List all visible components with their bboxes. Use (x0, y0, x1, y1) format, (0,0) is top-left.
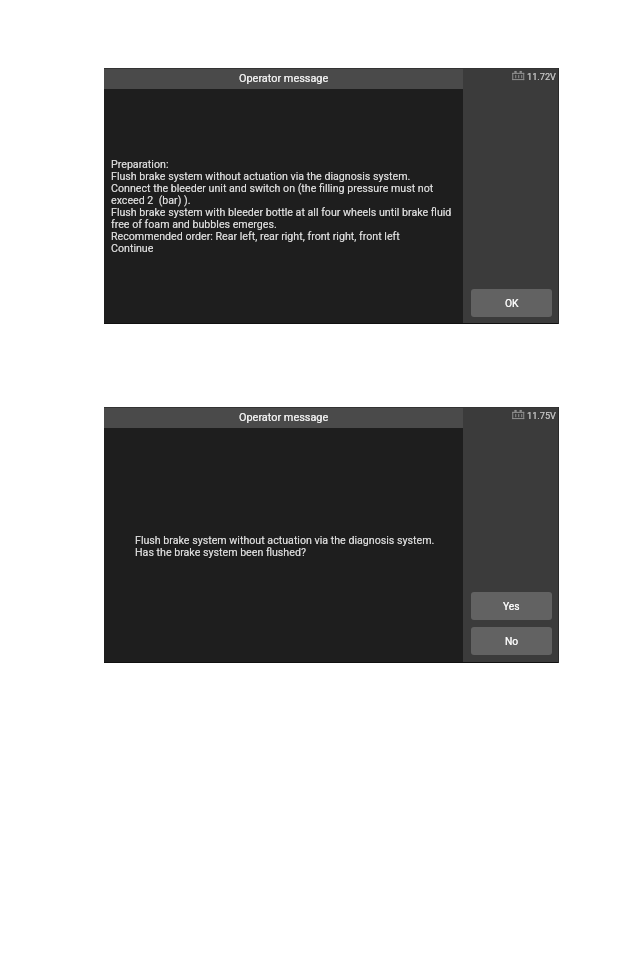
staticText: exceed 2 (bar) ). (111, 194, 191, 206)
staticText: 11.75V (527, 410, 556, 421)
staticText: No (505, 635, 519, 647)
button[interactable]: OK (471, 289, 552, 317)
staticText: Continue (111, 242, 154, 254)
staticText: Operator message (239, 72, 329, 85)
other: Battery voltage (512, 409, 525, 421)
staticText: Has the brake system been flushed? (135, 546, 306, 558)
staticText: Flush brake system without actuation via… (135, 534, 435, 546)
staticText: OK (505, 297, 519, 309)
other: Battery voltage (512, 70, 525, 82)
staticText: Recommended order: Rear left, rear right… (111, 230, 400, 242)
staticText: Preparation: (111, 158, 169, 170)
staticText: Connect the bleeder unit and switch on (… (111, 182, 434, 194)
staticText: Yes (503, 600, 520, 612)
button[interactable]: No (471, 627, 552, 655)
staticText: Flush brake system with bleeder bottle a… (111, 206, 452, 218)
staticText: Operator message (239, 411, 329, 424)
staticText: Flush brake system without actuation via… (111, 170, 411, 182)
staticText: free of foam and bubbles emerges. (111, 218, 277, 230)
button[interactable]: Yes (471, 592, 552, 620)
staticText: 11.72V (527, 71, 556, 82)
